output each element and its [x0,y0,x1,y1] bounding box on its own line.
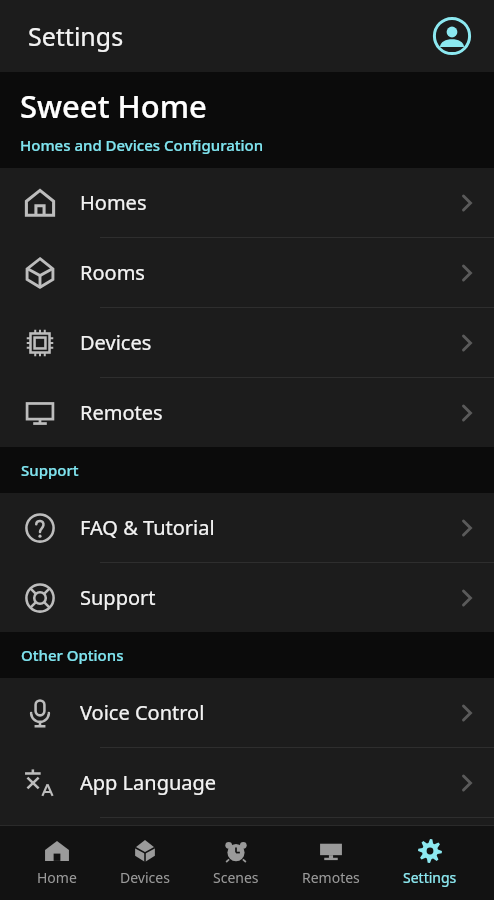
button[interactable]: Devices [114,834,176,891]
staticText: Remotes [302,868,360,887]
staticText: Remotes [80,399,440,426]
staticText: Voice Control [80,699,440,726]
staticText: Scenes [213,868,259,887]
staticText: Settings [403,868,457,887]
button[interactable]: Remotes [0,378,494,447]
staticText: Homes [80,189,440,216]
staticText: Devices [80,329,440,356]
staticText: Settings [28,19,124,53]
button[interactable]: Support [0,563,494,632]
button[interactable]: Scenes [207,834,265,891]
staticText: Sweet Home [20,85,207,127]
staticText: Home [37,868,77,887]
button[interactable]: FAQ & Tutorial [0,493,494,562]
staticText: App Language [80,769,440,796]
button[interactable]: Voice Control [0,678,494,747]
staticText: Rooms [80,259,440,286]
staticText: Support [21,460,79,480]
button[interactable]: Rooms [0,238,494,307]
button[interactable]: Remotes [296,834,366,891]
staticText: Homes and Devices Configuration [20,135,264,155]
button[interactable]: Homes [0,168,494,237]
staticText: Other Options [21,645,124,665]
button[interactable]: Account [432,16,472,56]
staticText: Devices [120,868,170,887]
button[interactable]: App Language [0,748,494,817]
button[interactable]: Home [31,834,83,891]
button[interactable]: Devices [0,308,494,377]
button[interactable]: Settings [397,834,463,891]
staticText: Support [80,584,440,611]
staticText: FAQ & Tutorial [80,514,440,541]
